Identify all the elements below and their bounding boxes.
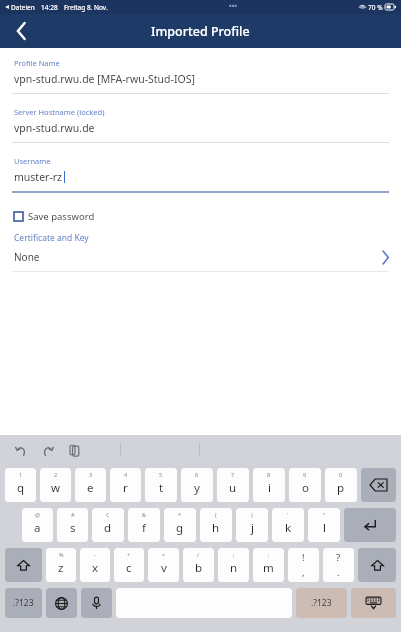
staticText: * (178, 511, 182, 518)
button[interactable]: Shift (358, 548, 396, 582)
staticText: Dateien (11, 3, 35, 12)
other: Change keyboard language (46, 588, 77, 618)
other: Hide keyboard (351, 588, 396, 618)
button[interactable]: 6 (181, 468, 213, 502)
button[interactable]: 7 (217, 468, 249, 502)
button[interactable]: Voice input (81, 588, 112, 618)
staticText: vpn-stud.rwu.de [MFA-rwu-Stud-IOS] (14, 72, 195, 86)
staticText: = (162, 551, 166, 558)
staticText: ? (336, 551, 341, 564)
button[interactable]: Change keyboard language (46, 588, 77, 618)
staticText: .?123 (13, 597, 34, 609)
button[interactable]: ; (218, 548, 249, 582)
staticText: vpn-stud.rwu.de (14, 121, 95, 135)
staticText: Save password (28, 210, 95, 223)
staticText: 2 (54, 471, 58, 478)
button[interactable]: 1 (5, 468, 36, 502)
button[interactable]: Shift (5, 548, 42, 582)
button[interactable]: .?123 (5, 588, 42, 618)
staticText: Certificate and Key (14, 232, 89, 244)
button[interactable]: : (253, 548, 284, 582)
staticText: .?123 (311, 597, 332, 609)
staticText: c (126, 560, 132, 576)
staticText: y (194, 480, 200, 496)
button[interactable]: Profile Name (0, 58, 401, 107)
other: Return (344, 508, 396, 542)
staticText: g (176, 520, 184, 536)
staticText: & (142, 511, 147, 518)
staticText: 8 (267, 471, 271, 478)
staticText: . (337, 566, 340, 579)
staticText: s (70, 520, 76, 536)
staticText: h (212, 520, 220, 536)
button[interactable]: Server Hostname (locked) (0, 107, 401, 156)
button[interactable]: = (148, 548, 179, 582)
staticText: q (17, 480, 25, 496)
staticText: 0 (339, 471, 343, 478)
staticText: - (94, 551, 96, 558)
button[interactable]: - (80, 548, 110, 582)
button[interactable]: Username (0, 156, 401, 206)
button[interactable]: Backspace (361, 468, 396, 502)
button[interactable]: / (183, 548, 214, 582)
button[interactable]: 3 (75, 468, 106, 502)
staticText: l (323, 520, 326, 536)
staticText: ( (215, 511, 217, 518)
staticText: , (302, 566, 305, 579)
button[interactable]: 8 (253, 468, 285, 502)
staticText: p (337, 480, 345, 496)
button[interactable]: None (0, 250, 401, 272)
staticText: k (285, 520, 292, 536)
staticText: ••• (229, 2, 237, 12)
button[interactable]: Save password (14, 210, 401, 223)
button[interactable]: ( (200, 508, 232, 542)
button[interactable]: ' (272, 508, 304, 542)
button[interactable]: Hide keyboard (351, 588, 396, 618)
button[interactable]: ! (288, 548, 319, 582)
staticText: r (123, 480, 128, 496)
button[interactable]: * (164, 508, 196, 542)
staticText: @ (35, 511, 40, 518)
button[interactable]: ¢ (92, 508, 124, 542)
staticText: f (142, 520, 146, 536)
button[interactable]: 9 (289, 468, 321, 502)
button[interactable]: 5 (145, 468, 177, 502)
button[interactable]: @ (22, 508, 53, 542)
button[interactable]: 2 (40, 468, 71, 502)
staticText: j (251, 520, 254, 536)
staticText: " (323, 511, 326, 518)
staticText: 6 (195, 471, 199, 478)
staticText: None (14, 250, 40, 264)
staticText: : (268, 551, 270, 558)
staticText: Imported Profile (151, 23, 250, 40)
button[interactable]: % (46, 548, 76, 582)
staticText: e (87, 480, 94, 496)
button[interactable]: + (114, 548, 144, 582)
button[interactable]: " (308, 508, 340, 542)
staticText: x (92, 560, 99, 576)
button[interactable]: Undo (13, 443, 28, 458)
staticText: % (59, 551, 64, 558)
staticText: b (195, 560, 203, 576)
staticText: muster-rz (14, 170, 63, 184)
button[interactable]: Paste (67, 443, 82, 458)
button[interactable]: # (57, 508, 88, 542)
button[interactable]: ? (323, 548, 354, 582)
staticText: 70 % (368, 3, 383, 12)
button[interactable]: 4 (110, 468, 141, 502)
button[interactable]: Return (344, 508, 396, 542)
staticText: + (127, 551, 131, 558)
button[interactable]: Redo (40, 443, 55, 458)
staticText: 9 (303, 471, 307, 478)
button[interactable]: .?123 (296, 588, 347, 618)
button[interactable]: ) (236, 508, 268, 542)
button[interactable]: Back (0, 14, 42, 48)
button[interactable]: 0 (325, 468, 357, 502)
staticText: ) (251, 511, 253, 518)
other: Shift (5, 548, 42, 582)
staticText: i (268, 480, 271, 496)
button[interactable]: & (128, 508, 160, 542)
other: Voice input (81, 588, 112, 618)
staticText: d (104, 520, 112, 536)
